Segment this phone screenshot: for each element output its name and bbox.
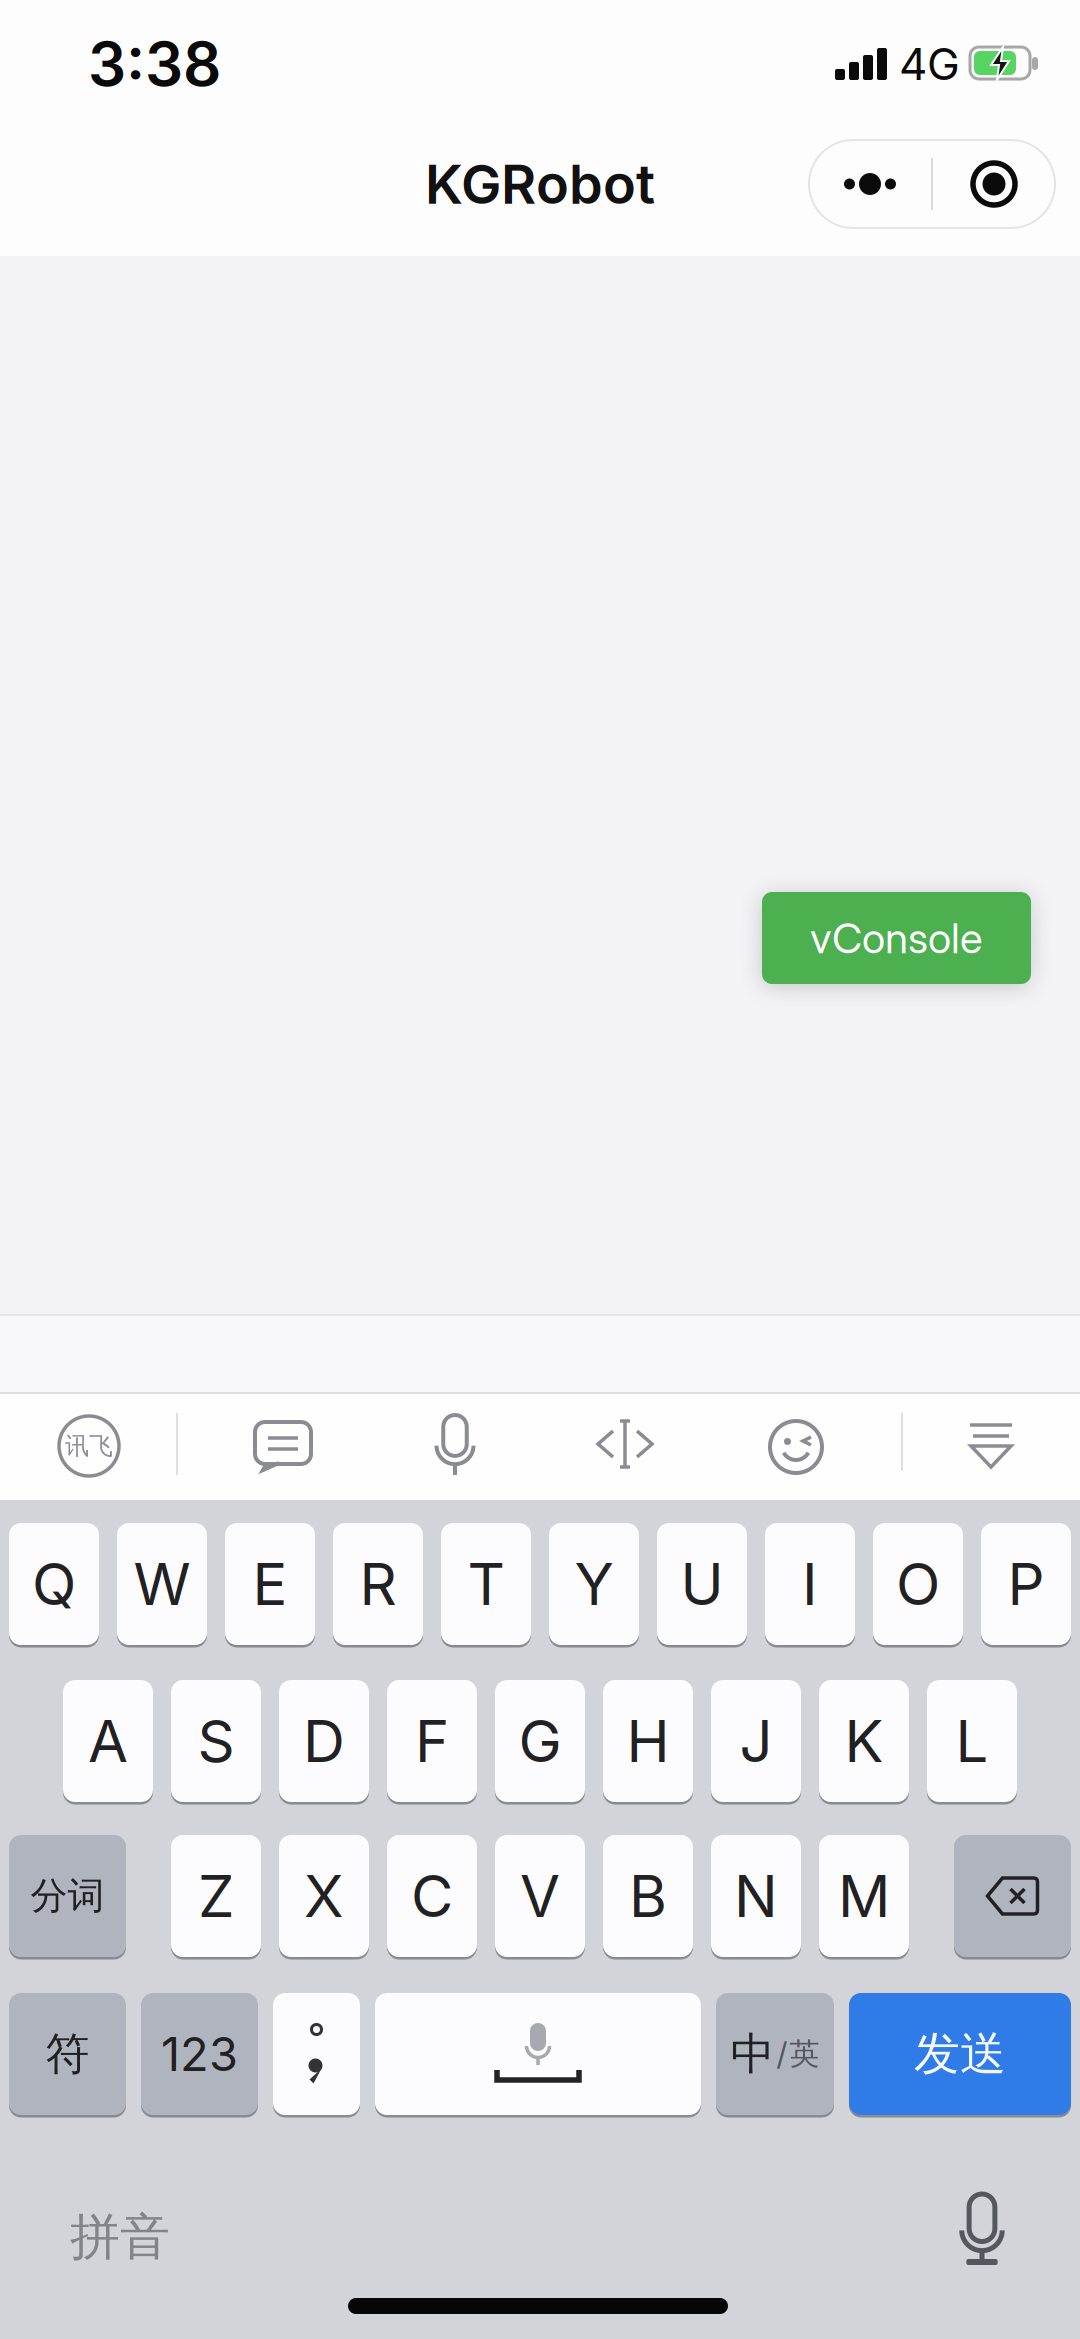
- button[interactable]: Z: [171, 1835, 261, 1957]
- button[interactable]: B: [603, 1835, 693, 1957]
- staticText: L: [955, 1706, 988, 1776]
- button[interactable]: More: [809, 139, 931, 229]
- button[interactable]: K: [819, 1680, 909, 1802]
- button[interactable]: U: [657, 1523, 747, 1645]
- staticText: KGRobot: [425, 151, 655, 217]
- staticText: 123: [161, 2026, 238, 2082]
- button[interactable]: X: [279, 1835, 369, 1957]
- staticText: 符: [45, 2026, 89, 2082]
- button[interactable]: S: [171, 1680, 261, 1802]
- button[interactable]: 拼音: [70, 2205, 170, 2268]
- staticText: V: [520, 1861, 560, 1931]
- staticText: 英: [789, 2035, 819, 2073]
- staticText: G: [518, 1706, 561, 1776]
- staticText: Q: [32, 1549, 76, 1619]
- button[interactable]: Q: [9, 1523, 99, 1645]
- staticText: D: [303, 1706, 345, 1776]
- button[interactable]: C: [387, 1835, 477, 1957]
- button[interactable]: H: [603, 1680, 693, 1802]
- button[interactable]: D: [279, 1680, 369, 1802]
- staticText: C: [411, 1861, 453, 1931]
- button[interactable]: O: [873, 1523, 963, 1645]
- button[interactable]: T: [441, 1523, 531, 1645]
- button[interactable]: N: [711, 1835, 801, 1957]
- button[interactable]: E: [225, 1523, 315, 1645]
- button[interactable]: 分词: [9, 1835, 126, 1957]
- staticText: F: [415, 1706, 449, 1776]
- button[interactable]: Voice input: [434, 1414, 476, 1476]
- button[interactable]: W: [117, 1523, 207, 1645]
- staticText: R: [359, 1549, 396, 1619]
- staticText: N: [734, 1861, 778, 1931]
- button[interactable]: 符: [9, 1993, 126, 2115]
- staticText: 讯飞: [65, 1431, 113, 1461]
- button[interactable]: I: [765, 1523, 855, 1645]
- button[interactable]: Emoji: [767, 1418, 825, 1476]
- button[interactable]: 发送: [849, 1993, 1071, 2115]
- button[interactable]: Input method: [58, 1415, 120, 1477]
- staticText: W: [133, 1549, 190, 1619]
- button[interactable]: V: [495, 1835, 585, 1957]
- staticText: P: [1007, 1549, 1044, 1619]
- staticText: I: [802, 1549, 818, 1619]
- button[interactable]: Y: [549, 1523, 639, 1645]
- staticText: Z: [198, 1861, 234, 1931]
- staticText: Y: [574, 1549, 613, 1619]
- staticText: 分词: [30, 1873, 104, 1919]
- staticText: O: [896, 1549, 940, 1619]
- staticText: H: [626, 1706, 669, 1776]
- staticText: A: [88, 1706, 128, 1776]
- staticText: X: [304, 1861, 344, 1931]
- button[interactable]: Hide keyboard: [969, 1422, 1013, 1470]
- button[interactable]: Semicolon: [273, 1993, 360, 2115]
- staticText: 发送: [914, 2025, 1006, 2083]
- staticText: vConsole: [810, 913, 983, 963]
- staticText: K: [844, 1706, 883, 1776]
- button[interactable]: Space: [375, 1993, 701, 2115]
- staticText: B: [629, 1861, 667, 1931]
- button[interactable]: A: [63, 1680, 153, 1802]
- staticText: 中: [730, 2026, 774, 2082]
- button[interactable]: Move cursor: [595, 1416, 655, 1472]
- staticText: T: [467, 1549, 504, 1619]
- button[interactable]: Delete: [954, 1835, 1071, 1957]
- button[interactable]: vConsole: [762, 892, 1031, 984]
- button[interactable]: P: [981, 1523, 1071, 1645]
- button[interactable]: 中: [716, 1993, 834, 2115]
- button[interactable]: Dictation: [959, 2193, 1005, 2265]
- button[interactable]: Messages: [254, 1421, 312, 1471]
- button[interactable]: F: [387, 1680, 477, 1802]
- staticText: 4G: [899, 37, 960, 91]
- button[interactable]: J: [711, 1680, 801, 1802]
- staticText: 拼音: [70, 2205, 170, 2268]
- button[interactable]: R: [333, 1523, 423, 1645]
- button[interactable]: M: [819, 1835, 909, 1957]
- button[interactable]: Close: [933, 139, 1055, 229]
- button[interactable]: 123: [141, 1993, 258, 2115]
- staticText: U: [680, 1549, 723, 1619]
- staticText: S: [197, 1706, 234, 1776]
- button[interactable]: L: [927, 1680, 1017, 1802]
- staticText: J: [739, 1706, 772, 1776]
- button[interactable]: G: [495, 1680, 585, 1802]
- staticText: E: [252, 1549, 287, 1619]
- staticText: /: [776, 2035, 787, 2073]
- staticText: M: [838, 1861, 890, 1931]
- staticText: 3:38: [88, 28, 221, 100]
